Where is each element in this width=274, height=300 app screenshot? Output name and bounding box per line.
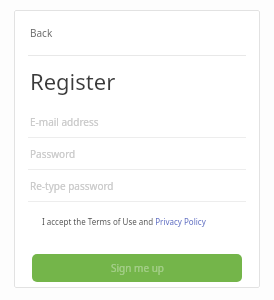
- staticText: E-mail address: [30, 115, 99, 129]
- staticText: Re-type password: [30, 179, 114, 193]
- button[interactable]: E-mail address: [14, 106, 260, 137]
- staticText: Sign me up: [111, 261, 164, 275]
- staticText: Register: [30, 66, 116, 96]
- staticText: I accept the Terms of Use and Privacy Po…: [42, 216, 206, 227]
- button[interactable]: Re-type password: [14, 170, 260, 201]
- staticText: Password: [30, 147, 76, 161]
- button[interactable]: Back: [14, 10, 260, 55]
- staticText: Back: [30, 26, 53, 40]
- button[interactable]: Password: [14, 138, 260, 169]
- button[interactable]: Sign me up: [32, 254, 242, 282]
- button[interactable]: I accept the Terms of Use and Privacy Po…: [14, 210, 260, 232]
